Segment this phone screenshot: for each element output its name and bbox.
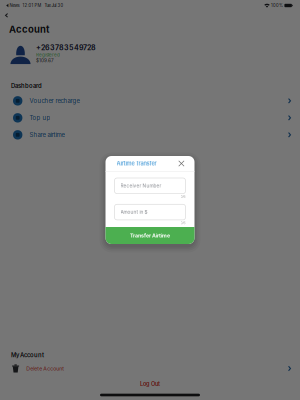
button[interactable]: Delete Account <box>0 360 300 377</box>
staticText: Amount in $ <box>120 209 147 215</box>
staticText: Airtime Transfer <box>116 160 156 167</box>
staticText: Account <box>9 24 49 35</box>
staticText: 0/6 <box>180 221 185 225</box>
staticText: Dashboard <box>11 82 42 89</box>
staticText: $109.67 <box>36 58 54 63</box>
staticText: Delete Account <box>26 365 64 372</box>
staticText: 100% <box>270 3 283 8</box>
button[interactable]: Log Out <box>0 377 300 391</box>
button[interactable]: Share airtime <box>0 126 300 143</box>
button[interactable]: Top up <box>0 109 300 126</box>
staticText: News <box>9 3 20 8</box>
staticText: Top up <box>29 114 50 121</box>
staticText: My Account <box>11 351 44 359</box>
staticText: Registered <box>36 52 60 58</box>
staticText: 0/6 <box>180 195 185 199</box>
staticText: +263783549728 <box>36 43 96 52</box>
button[interactable]: Transfer Airtime <box>105 227 194 244</box>
staticText: Voucher recharge <box>29 97 79 104</box>
button[interactable]: Voucher recharge <box>0 92 300 109</box>
staticText: Receiver Number <box>120 183 161 189</box>
button[interactable]: Back <box>0 11 16 20</box>
staticText: Log Out <box>140 381 160 387</box>
staticText: Tue Jul 30 <box>42 3 64 8</box>
staticText: Share airtime <box>29 131 64 138</box>
staticText: 12:01 PM <box>20 3 42 8</box>
button[interactable]: Close <box>178 160 184 167</box>
staticText: Transfer Airtime <box>130 232 170 239</box>
